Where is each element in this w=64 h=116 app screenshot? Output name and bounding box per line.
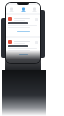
button[interactable]: Profile [32,7,37,12]
button[interactable]: More options [6,38,40,59]
button[interactable]: Home [21,7,26,12]
button[interactable] [8,53,38,56]
button[interactable]: Menu [9,7,14,12]
button[interactable]: More options [6,15,40,36]
button[interactable]: Expand [6,61,40,63]
button[interactable] [8,30,38,33]
